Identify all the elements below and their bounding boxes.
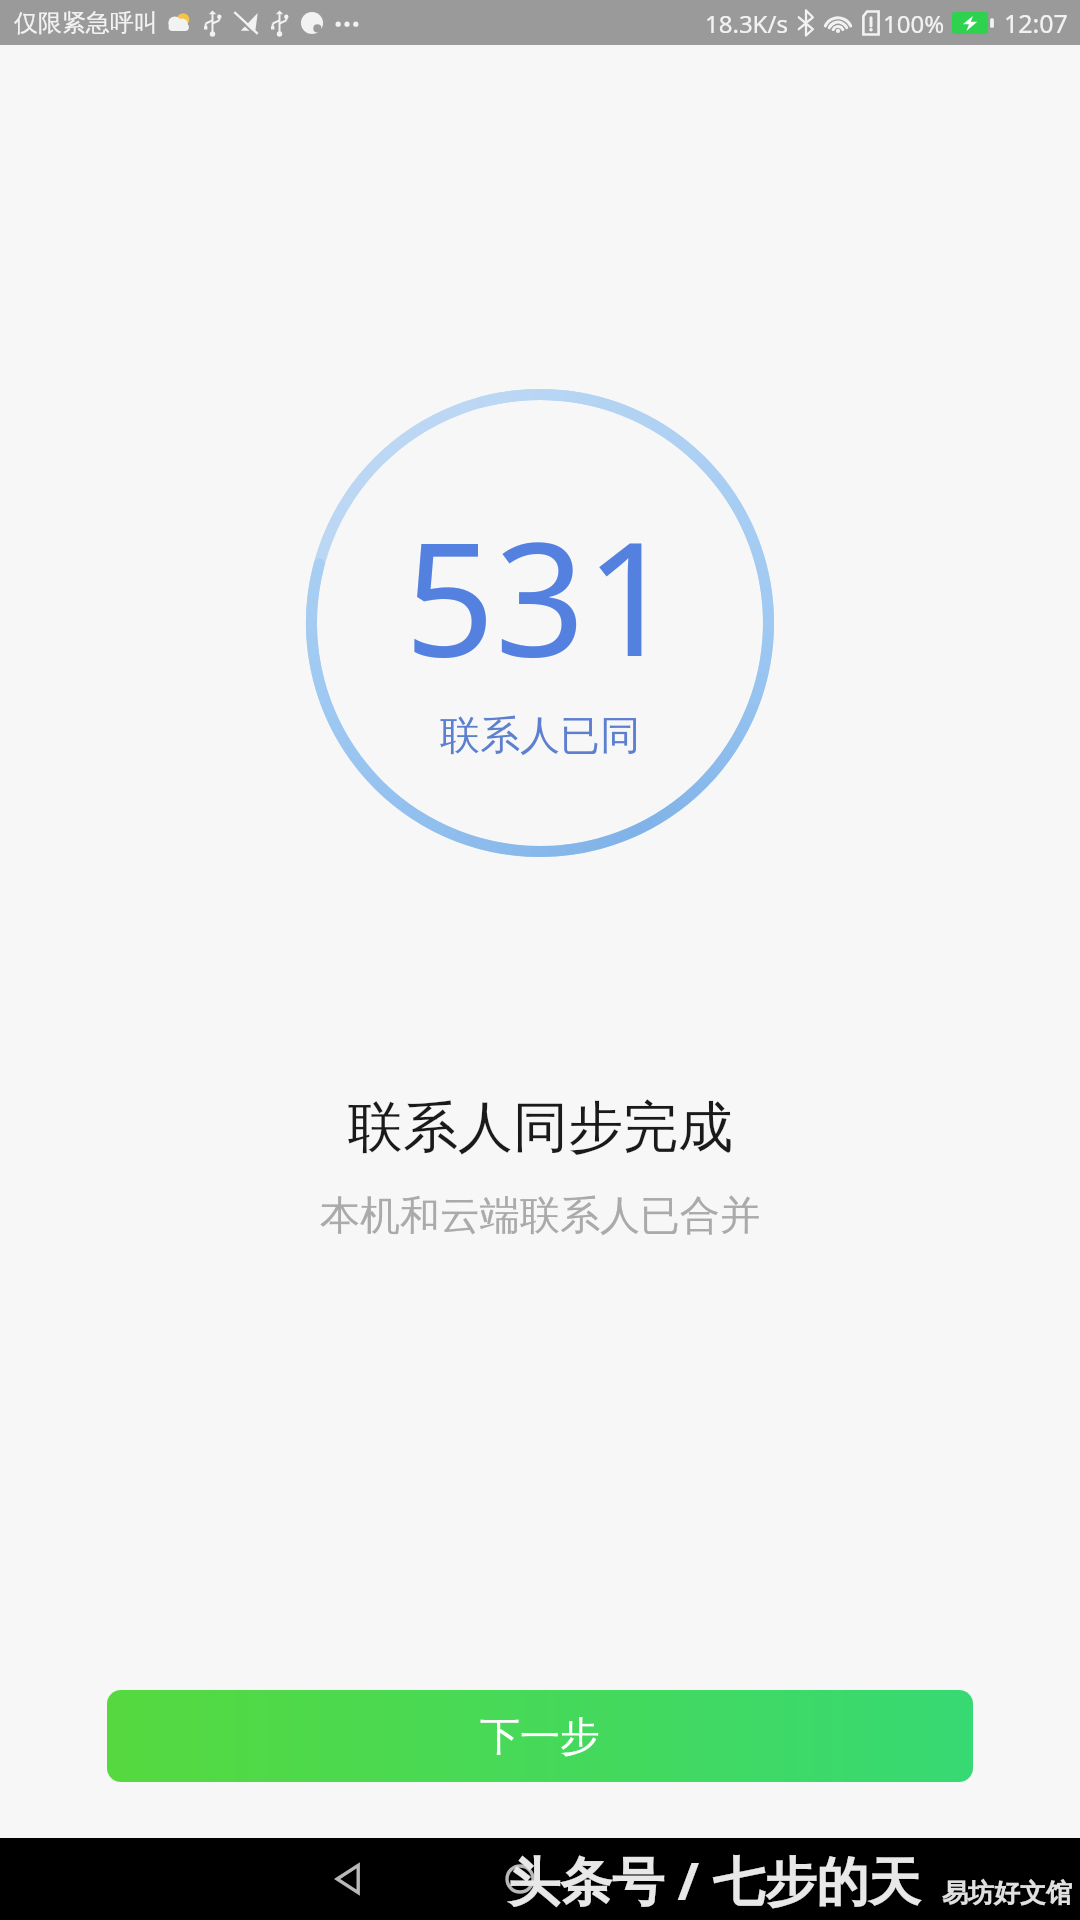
staticText: 本机和云端联系人已合并 [320,1190,760,1240]
staticText: 易坊好文馆 [942,1877,1072,1910]
staticText: 531 [404,487,676,702]
staticText: 联系人已同 [440,710,640,760]
staticText: 100% [883,7,945,40]
staticText: 仅限紧急呼叫 [14,8,158,38]
button[interactable]: Home [472,1838,568,1920]
staticText: 18.3K/s [705,7,788,40]
staticText: 头条号 / 七步的天 [508,1844,921,1915]
staticText: 联系人同步完成 [348,1093,733,1162]
button[interactable]: 下一步 [107,1690,973,1782]
staticText: 12:07 [1004,6,1068,40]
staticText: 下一步 [480,1711,600,1761]
button[interactable]: Back [300,1838,396,1920]
